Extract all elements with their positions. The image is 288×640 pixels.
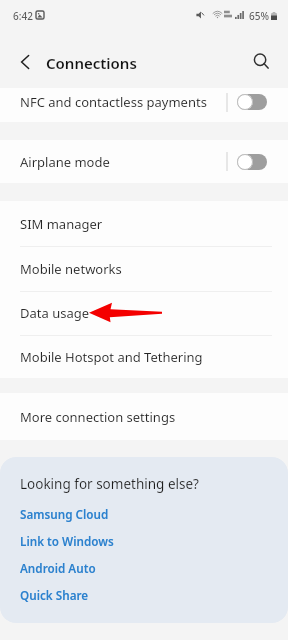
staticText: 6:42 — [13, 9, 33, 23]
button[interactable]: Toggle — [237, 154, 267, 170]
button[interactable]: NFC and contactless payments — [0, 88, 288, 116]
staticText: 65% — [249, 9, 269, 23]
staticText: Mobile Hotspot and Tethering — [20, 348, 203, 366]
staticText: Looking for something else? — [20, 475, 199, 493]
button[interactable]: SIM manager — [0, 201, 288, 247]
staticText: Connections — [46, 53, 137, 73]
button[interactable]: Toggle — [237, 94, 267, 110]
staticText: NFC and contactless payments — [20, 93, 226, 111]
button[interactable]: Quick Share — [20, 587, 89, 603]
button[interactable]: Data usage — [0, 291, 288, 335]
button[interactable]: More connection settings — [0, 394, 288, 440]
staticText: Data usage — [20, 304, 90, 322]
button[interactable]: Navigate up — [10, 47, 40, 77]
staticText: Airplane mode — [20, 153, 226, 171]
button[interactable]: Android Auto — [20, 560, 96, 576]
staticText: More connection settings — [20, 408, 176, 426]
staticText: Link to Windows — [20, 533, 114, 549]
button[interactable]: Mobile Hotspot and Tethering — [0, 335, 288, 378]
button[interactable]: Airplane mode — [0, 140, 288, 183]
button[interactable]: Search — [247, 47, 277, 77]
button[interactable]: Link to Windows — [20, 533, 114, 549]
staticText: Mobile networks — [20, 260, 122, 278]
staticText: SIM manager — [20, 215, 103, 233]
button[interactable]: Mobile networks — [0, 246, 288, 291]
staticText: Samsung Cloud — [20, 506, 109, 522]
button[interactable]: Samsung Cloud — [20, 506, 109, 522]
staticText: Android Auto — [20, 560, 96, 576]
staticText: Quick Share — [20, 587, 89, 603]
